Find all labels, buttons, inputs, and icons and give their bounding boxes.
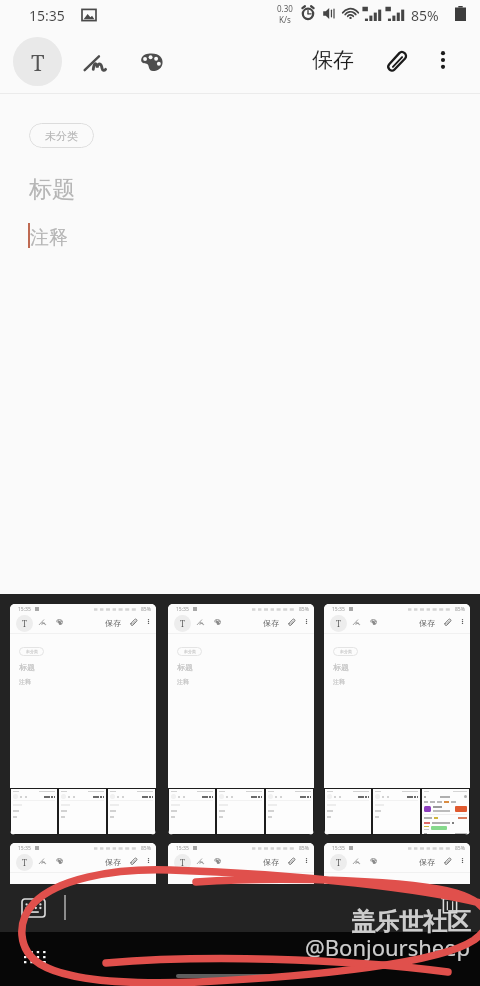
staticText: 保存 — [419, 618, 435, 628]
staticText: 85% — [141, 845, 151, 852]
staticText: 15:35 — [332, 606, 345, 613]
staticText: 标题 — [177, 662, 193, 672]
staticText: 标题 — [29, 175, 75, 204]
staticText: T — [336, 857, 341, 868]
staticText: 注释 — [333, 678, 345, 686]
staticText: 注释 — [19, 917, 31, 925]
staticText: T — [180, 857, 185, 868]
button[interactable]: Keyboard switch — [24, 951, 47, 965]
staticText: 15:35 — [176, 845, 189, 852]
button[interactable]: 15:35 — [168, 604, 314, 835]
staticText: @Bonjoursheep — [305, 932, 471, 962]
button[interactable]: 未分类 — [29, 123, 94, 148]
staticText: 0.30 — [277, 3, 293, 14]
button[interactable]: 15:35 — [10, 843, 156, 986]
staticText: 85% — [455, 606, 465, 613]
button[interactable]: Attach file — [377, 40, 417, 80]
staticText: 15:35 — [332, 845, 345, 852]
staticText: 保存 — [419, 857, 435, 867]
staticText: 85% — [455, 845, 465, 852]
staticText: T — [22, 857, 27, 868]
staticText: 15:35 — [18, 606, 31, 613]
staticText: K/s — [279, 14, 291, 25]
button[interactable]: 15:35 — [324, 843, 470, 986]
button[interactable]: Palette — [129, 40, 173, 84]
button[interactable]: 15:35 — [324, 604, 470, 835]
staticText: 盖乐世社区 — [351, 907, 471, 937]
staticText: 标题 — [19, 662, 35, 672]
staticText: 保存 — [312, 47, 354, 73]
staticText: 85% — [299, 845, 309, 852]
button[interactable]: Handwriting — [73, 40, 117, 84]
staticText: T — [180, 618, 185, 629]
staticText: 未分类 — [340, 649, 352, 654]
button[interactable]: More options — [423, 40, 463, 80]
staticText: 保存 — [263, 618, 279, 628]
button[interactable]: Text mode — [13, 37, 62, 86]
button[interactable]: Delete — [439, 893, 461, 915]
staticText: T — [22, 618, 27, 629]
staticText: 注释 — [30, 226, 68, 250]
button[interactable]: 保存 — [304, 43, 362, 77]
staticText: 标题 — [19, 901, 35, 911]
staticText: 15:35 — [29, 6, 65, 25]
staticText: 85% — [299, 606, 309, 613]
button[interactable]: Keyboard — [22, 899, 45, 917]
staticText: 未分类 — [45, 129, 78, 143]
staticText: 保存 — [105, 618, 121, 628]
staticText: 未分类 — [26, 649, 38, 654]
staticText: 保存 — [263, 857, 279, 867]
staticText: 85% — [141, 606, 151, 613]
button[interactable]: 15:35 — [10, 604, 156, 835]
staticText: 15:35 — [176, 606, 189, 613]
staticText: T — [31, 47, 45, 77]
staticText: 注释 — [19, 678, 31, 686]
staticText: 保存 — [105, 857, 121, 867]
staticText: 15:35 — [18, 845, 31, 852]
staticText: 标题 — [333, 662, 349, 672]
staticText: 未分类 — [184, 649, 196, 654]
staticText: 注释 — [177, 678, 189, 686]
button[interactable]: 15:35 — [168, 843, 314, 986]
staticText: T — [336, 618, 341, 629]
staticText: 85% — [411, 6, 439, 25]
